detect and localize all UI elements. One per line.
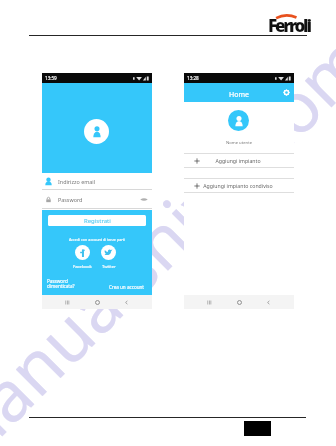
staticText: Password dimenticata? [47, 278, 75, 290]
button[interactable]: Facebook [71, 245, 94, 270]
staticText: 13:59 [45, 75, 57, 81]
staticText: Indirizzo email [58, 178, 96, 185]
staticText: Twitter [102, 264, 116, 270]
staticText: Registrati [84, 217, 111, 225]
staticText: 13:28 [187, 75, 199, 81]
staticText: Crea un account [104, 284, 144, 290]
staticText: Password [58, 196, 83, 203]
button[interactable]: Crea un account [104, 284, 144, 290]
staticText: Accedi con account di terze parti [42, 237, 152, 242]
button[interactable]: Password [42, 190, 152, 209]
staticText: Aggiungi impianto [200, 157, 276, 164]
button[interactable]: Twitter [97, 245, 120, 270]
button[interactable]: Recents [63, 298, 72, 307]
button[interactable]: Settings [283, 89, 290, 96]
button[interactable]: Home [93, 298, 102, 307]
button[interactable]: Home [235, 298, 244, 307]
button[interactable]: Registrati [48, 215, 146, 226]
staticText: Facebook [73, 264, 92, 270]
staticText: Home [229, 90, 249, 100]
button[interactable]: Indirizzo email [42, 173, 152, 190]
button[interactable]: Password dimenticata? [47, 278, 75, 290]
button[interactable]: Back [264, 298, 273, 307]
button[interactable]: Aggiungi impianto condiviso [184, 178, 294, 193]
button[interactable]: Recents [205, 298, 214, 307]
button[interactable]: Back [122, 298, 131, 307]
button[interactable]: Aggiungi impianto [184, 153, 294, 168]
staticText: Nome utente [184, 140, 294, 146]
staticText: Aggiungi impianto condiviso [200, 182, 276, 189]
staticText: Ferroli [268, 14, 310, 37]
